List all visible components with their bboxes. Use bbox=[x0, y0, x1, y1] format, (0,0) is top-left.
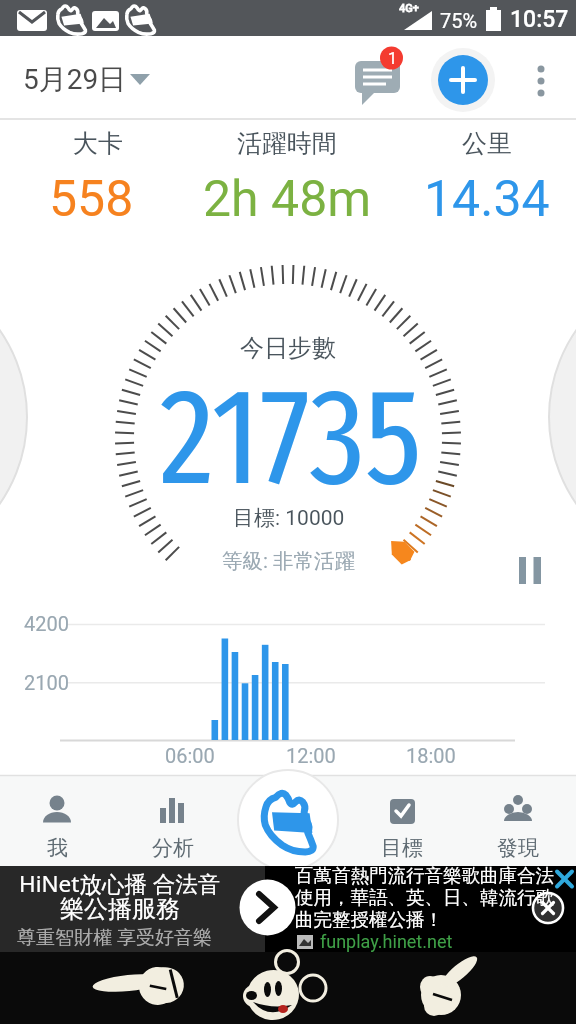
staticText: 發現 bbox=[497, 835, 539, 861]
button[interactable] bbox=[438, 55, 488, 105]
button[interactable] bbox=[526, 60, 556, 104]
staticText: 公里 bbox=[462, 128, 512, 158]
staticText: 目標: 10000 bbox=[233, 505, 345, 531]
button[interactable] bbox=[12, 778, 102, 864]
staticText: 558 bbox=[49, 170, 134, 224]
staticText: 2100 bbox=[24, 671, 69, 694]
staticText: 4200 bbox=[24, 612, 69, 635]
staticText: 等級: 非常活躍 bbox=[222, 548, 356, 574]
button[interactable] bbox=[357, 778, 447, 864]
button[interactable] bbox=[505, 545, 555, 595]
staticText: 大卡 bbox=[73, 128, 123, 158]
button[interactable] bbox=[0, 866, 265, 952]
staticText: 樂公播服務 bbox=[60, 894, 180, 924]
button[interactable] bbox=[473, 778, 563, 864]
staticText: 5月29日 bbox=[23, 62, 127, 97]
staticText: 06:00 bbox=[165, 744, 215, 767]
staticText: 12:00 bbox=[286, 744, 336, 767]
staticText: 2h 48m bbox=[203, 170, 372, 224]
staticText: 活躍時間 bbox=[237, 128, 337, 158]
staticText: 曲完整授權公播！ bbox=[295, 908, 443, 931]
staticText: 1 bbox=[388, 49, 397, 68]
staticText: 10:57 bbox=[510, 6, 569, 32]
staticText: HiNet放心播 合法音 bbox=[19, 868, 221, 898]
button[interactable]: 5月29日 bbox=[10, 61, 140, 97]
button[interactable] bbox=[128, 778, 218, 864]
staticText: 18:00 bbox=[406, 744, 456, 767]
staticText: 4G+ bbox=[399, 2, 419, 14]
staticText: 14.34 bbox=[424, 170, 550, 224]
staticText: 21735 bbox=[160, 357, 422, 507]
staticText: 使用，華語、英、日、韓流行歌 bbox=[295, 886, 554, 909]
staticText: 75% bbox=[440, 9, 478, 32]
staticText: 目標 bbox=[381, 835, 423, 861]
staticText: 我 bbox=[47, 835, 68, 861]
staticText: 分析 bbox=[152, 835, 194, 861]
button[interactable] bbox=[238, 770, 338, 866]
staticText: 百萬首熱門流行音樂歌曲庫合法 bbox=[295, 864, 554, 887]
staticText: 今日步數 bbox=[240, 333, 336, 363]
staticText: funplay.hinet.net bbox=[320, 931, 453, 952]
button[interactable] bbox=[265, 866, 576, 952]
staticText: 尊重智財權 享受好音樂 bbox=[17, 924, 212, 948]
button[interactable] bbox=[345, 50, 405, 110]
